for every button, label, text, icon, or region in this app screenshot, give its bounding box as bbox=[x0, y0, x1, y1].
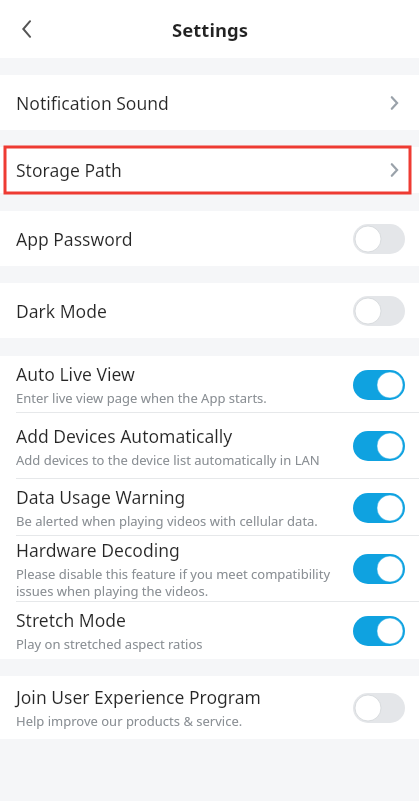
staticText: Join User Experience Program bbox=[16, 685, 261, 709]
button[interactable]: Auto Live View bbox=[0, 356, 419, 413]
staticText: Help improve our products & service. bbox=[16, 712, 243, 730]
button[interactable]: Stretch Mode bbox=[0, 602, 419, 659]
button[interactable]: Data Usage Warning bbox=[0, 479, 419, 536]
staticText: Dark Mode bbox=[16, 299, 107, 323]
staticText: App Password bbox=[16, 227, 133, 251]
staticText: Hardware Decoding bbox=[16, 538, 180, 562]
staticText: Auto Live View bbox=[16, 362, 135, 386]
staticText: Please disable this feature if you meet … bbox=[16, 565, 343, 600]
staticText: Storage Path bbox=[16, 158, 383, 182]
staticText: Stretch Mode bbox=[16, 608, 126, 632]
button[interactable]: Join User Experience Program bbox=[0, 676, 419, 739]
staticText: Add devices to the device list automatic… bbox=[16, 451, 320, 469]
staticText: Data Usage Warning bbox=[16, 485, 186, 509]
button[interactable]: Back bbox=[6, 7, 50, 51]
staticText: Settings bbox=[172, 17, 248, 42]
staticText: Be alerted when playing videos with cell… bbox=[16, 512, 318, 530]
button[interactable]: Add Devices Automatically bbox=[0, 413, 419, 479]
staticText: Notification Sound bbox=[16, 91, 383, 115]
button[interactable]: App Password bbox=[0, 211, 419, 266]
button[interactable]: Hardware Decoding bbox=[0, 536, 419, 602]
staticText: Add Devices Automatically bbox=[16, 424, 233, 448]
button[interactable]: Dark Mode bbox=[0, 283, 419, 338]
button[interactable]: Storage Path bbox=[0, 147, 419, 193]
staticText: Enter live view page when the App starts… bbox=[16, 389, 267, 407]
button[interactable]: Notification Sound bbox=[0, 75, 419, 130]
staticText: Play on stretched aspect ratios bbox=[16, 635, 203, 653]
